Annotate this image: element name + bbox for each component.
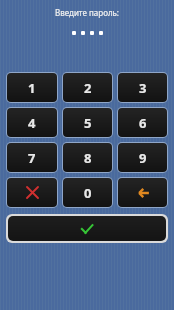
button[interactable]: Backspace [118, 178, 167, 207]
staticText: 8 [84, 149, 92, 167]
staticText: 5 [84, 114, 92, 132]
staticText: 7 [28, 149, 36, 167]
staticText: Введите пароль: [0, 7, 174, 18]
button[interactable]: 2 [63, 73, 112, 102]
button[interactable]: 3 [118, 73, 167, 102]
button[interactable]: 4 [7, 108, 57, 137]
staticText: 4 [28, 114, 36, 132]
button[interactable]: 5 [63, 108, 112, 137]
button[interactable]: 6 [118, 108, 167, 137]
button[interactable]: Clear [7, 178, 57, 207]
staticText: 6 [139, 114, 147, 132]
button[interactable]: Confirm [8, 216, 166, 241]
button[interactable]: 7 [7, 143, 57, 172]
button[interactable]: 9 [118, 143, 167, 172]
staticText: 9 [139, 149, 147, 167]
button[interactable]: 8 [63, 143, 112, 172]
staticText: 3 [139, 79, 147, 97]
staticText: 0 [84, 184, 92, 202]
staticText: 1 [28, 79, 36, 97]
button[interactable]: 1 [7, 73, 57, 102]
staticText: 2 [84, 79, 92, 97]
button[interactable]: 0 [63, 178, 112, 207]
